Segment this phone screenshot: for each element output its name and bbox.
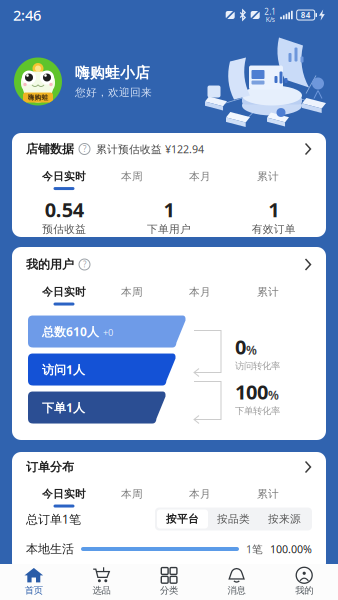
staticText: % <box>268 387 279 403</box>
staticText: 本周 <box>121 285 143 298</box>
staticText: 按来源 <box>268 512 301 525</box>
staticText: 本周 <box>121 170 143 183</box>
button[interactable]: 本月 <box>166 170 234 190</box>
button[interactable]: 累计 <box>234 285 302 305</box>
button[interactable]: 订单分布 <box>12 451 326 482</box>
staticText: 店铺数据 <box>26 142 74 156</box>
button[interactable]: 今日实时 <box>30 170 98 190</box>
staticText: 有效订单 <box>252 223 296 236</box>
staticText: K/s <box>266 15 275 24</box>
button[interactable]: 我的 <box>270 564 338 600</box>
button[interactable]: 累计 <box>234 487 302 507</box>
staticText: 订单分布 <box>26 460 74 474</box>
staticText: 0 <box>235 333 246 360</box>
staticText: 按平台 <box>166 512 199 525</box>
staticText: 累计 <box>257 285 279 298</box>
button[interactable]: 本周 <box>98 170 166 190</box>
staticText: 下单用户 <box>147 223 191 236</box>
staticText: 消息 <box>228 585 246 596</box>
staticText: 分类 <box>160 585 178 596</box>
staticText: 今日实时 <box>42 170 86 183</box>
button[interactable]: 今日实时 <box>30 487 98 507</box>
button[interactable]: 本月 <box>166 285 234 305</box>
staticText: 您好，欢迎回来 <box>75 86 152 99</box>
staticText: % <box>246 342 257 358</box>
staticText: 预估收益 <box>42 223 86 236</box>
staticText: 本地生活 <box>26 542 74 556</box>
staticText: ? <box>83 259 86 270</box>
staticText: 总订单1笔 <box>26 511 81 527</box>
button[interactable]: 按品类 <box>208 509 259 528</box>
staticText: 100.00% <box>270 542 312 556</box>
staticText: 选品 <box>92 585 110 596</box>
button[interactable]: 本周 <box>98 487 166 507</box>
staticText: 我的 <box>295 585 313 596</box>
staticText: +0 <box>103 326 113 338</box>
staticText: 下单1人 <box>42 399 85 415</box>
staticText: 本月 <box>189 285 211 298</box>
button[interactable]: 我的用户 <box>12 248 326 280</box>
staticText: 累计预估收益 ¥122.94 <box>96 142 204 156</box>
staticText: 2.1 <box>264 6 276 17</box>
staticText: 0.54 <box>45 196 84 223</box>
staticText: 嗨购蛙小店 <box>75 64 150 82</box>
staticText: ? <box>83 144 86 154</box>
button[interactable]: 消息 <box>203 564 270 600</box>
staticText: 我的用户 <box>26 257 74 272</box>
staticText: 1 <box>268 196 279 223</box>
staticText: 累计 <box>257 487 279 500</box>
staticText: 1 <box>163 196 174 223</box>
staticText: 84 <box>301 10 311 20</box>
staticText: 访问转化率 <box>235 360 280 372</box>
staticText: 本月 <box>189 170 211 183</box>
button[interactable]: 累计 <box>234 170 302 190</box>
staticText: 首页 <box>25 585 43 596</box>
staticText: 今日实时 <box>42 487 86 500</box>
staticText: 1笔 <box>246 542 263 556</box>
button[interactable]: 选品 <box>68 564 135 600</box>
button[interactable]: 今日实时 <box>30 285 98 305</box>
staticText: 2:46 <box>13 5 41 25</box>
staticText: 本月 <box>189 487 211 500</box>
button[interactable]: 按来源 <box>259 509 310 528</box>
staticText: 下单转化率 <box>235 405 280 416</box>
staticText: 总数610人 <box>42 323 99 339</box>
staticText: 访问1人 <box>42 361 85 377</box>
button[interactable]: 本周 <box>98 285 166 305</box>
button[interactable]: 本月 <box>166 487 234 507</box>
staticText: 按品类 <box>217 512 250 525</box>
staticText: 累计 <box>257 170 279 183</box>
button[interactable]: 分类 <box>135 564 203 600</box>
button[interactable]: 按平台 <box>157 509 208 528</box>
staticText: 100 <box>235 378 268 405</box>
button[interactable]: 首页 <box>0 564 68 600</box>
staticText: 嗨购蛙 <box>27 93 48 102</box>
staticText: 今日实时 <box>42 285 86 298</box>
staticText: 本周 <box>121 487 143 500</box>
button[interactable]: 店铺数据 <box>12 133 326 165</box>
